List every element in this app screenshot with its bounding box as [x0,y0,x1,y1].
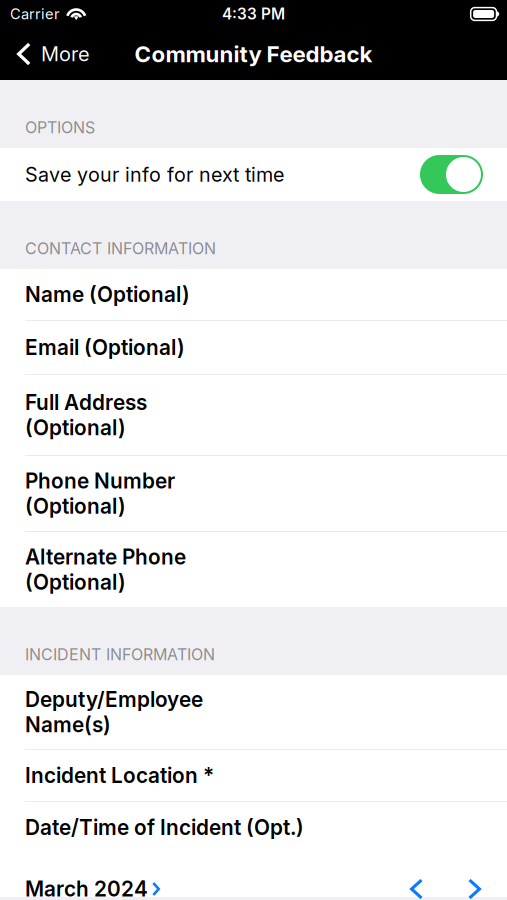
staticText: Name (Optional) [25,282,190,307]
staticText: Carrier [10,5,60,23]
staticText: OPTIONS [25,118,95,137]
button[interactable]: March 2024 [25,877,160,900]
staticText: March 2024 [25,876,148,900]
button[interactable]: Deputy/Employee [0,675,507,750]
staticText: (Optional) [25,569,126,595]
staticText: 4:33 PM [222,5,285,23]
button[interactable]: Previous month [398,878,435,899]
staticText: Full Address [25,390,147,415]
button[interactable]: Save your info for next time [420,155,483,194]
button[interactable]: More [0,28,104,80]
staticText: Email (Optional) [25,335,185,360]
staticText: Deputy/Employee [25,687,203,712]
staticText: More [41,42,90,66]
button[interactable]: Date/Time of Incident (Opt.) [0,802,507,854]
staticText: Alternate Phone [25,544,186,569]
button[interactable]: Alternate Phone [0,532,507,607]
staticText: CONTACT INFORMATION [25,239,216,258]
button[interactable]: Email (Optional) [0,321,507,375]
staticText: Save your info for next time [25,163,284,186]
button[interactable]: Name (Optional) [0,269,507,321]
button[interactable]: Full Address [0,375,507,456]
staticText: (Optional) [25,493,126,519]
staticText: Date/Time of Incident (Opt.) [25,815,304,840]
staticText: Name(s) [25,712,111,737]
staticText: INCIDENT INFORMATION [25,645,215,664]
staticText: Community Feedback [134,40,372,67]
button[interactable]: Next month [456,878,493,899]
button[interactable]: Phone Number [0,456,507,532]
button[interactable]: Incident Location * [0,750,507,802]
staticText: (Optional) [25,415,126,440]
staticText: Phone Number [25,468,175,493]
staticText: Incident Location * [25,763,214,788]
